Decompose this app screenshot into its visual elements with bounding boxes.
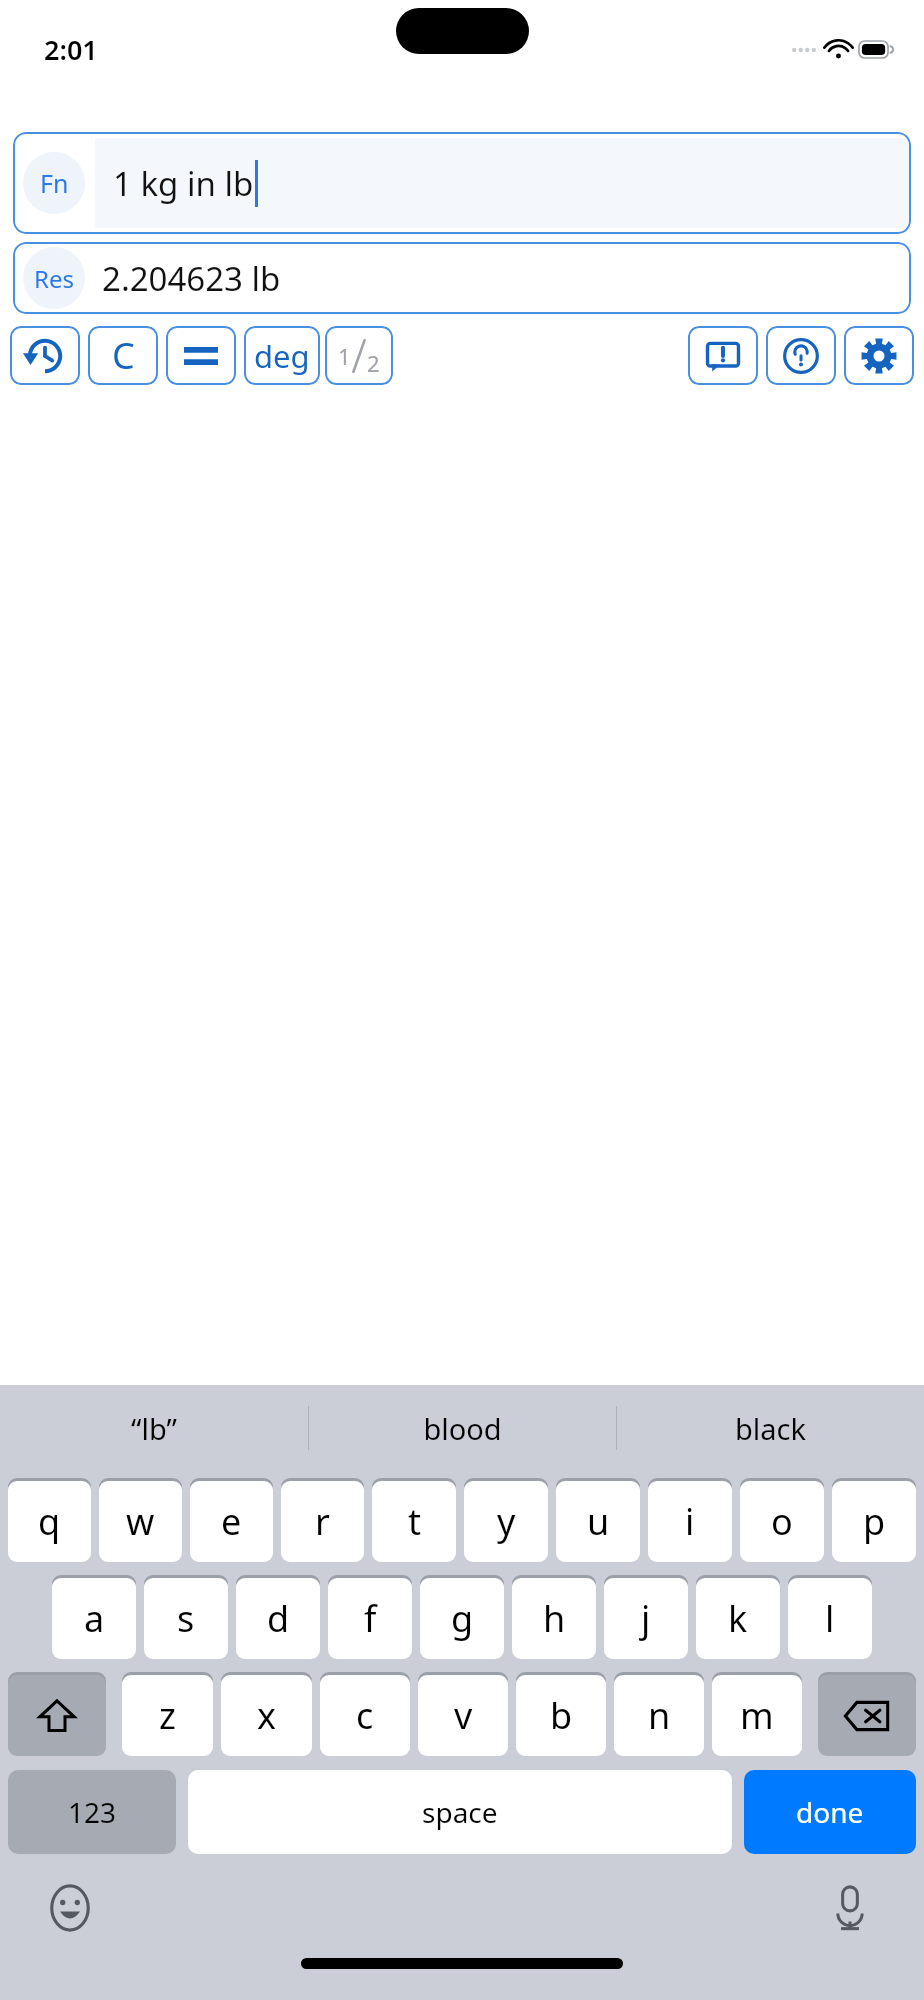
button[interactable]: j xyxy=(604,1578,688,1659)
button[interactable]: o xyxy=(740,1481,824,1562)
button[interactable]: Res xyxy=(13,242,911,314)
button[interactable]: s xyxy=(144,1578,228,1659)
button[interactable]: d xyxy=(236,1578,320,1659)
button[interactable]: Feedback xyxy=(688,326,758,385)
staticText: a xyxy=(84,1594,105,1643)
button[interactable]: “lb” xyxy=(0,1385,308,1471)
button[interactable]: f xyxy=(328,1578,412,1659)
button[interactable]: r xyxy=(281,1481,364,1562)
staticText: space xyxy=(422,1793,498,1831)
staticText: r xyxy=(315,1497,330,1546)
staticText: 2.204623 lb xyxy=(102,256,281,301)
staticText: black xyxy=(735,1409,806,1448)
staticText: 1 xyxy=(338,341,351,371)
staticText: o xyxy=(771,1497,793,1546)
button[interactable]: Clear xyxy=(88,326,158,385)
staticText: 123 xyxy=(68,1793,117,1831)
button[interactable]: m xyxy=(712,1675,802,1756)
button[interactable]: Shift xyxy=(8,1675,106,1756)
staticText: C xyxy=(112,331,135,380)
button[interactable]: space xyxy=(188,1770,732,1854)
staticText: c xyxy=(356,1691,374,1740)
staticText: h xyxy=(543,1594,566,1643)
staticText: Fn xyxy=(40,166,69,200)
button[interactable]: Voice input xyxy=(824,1882,876,1934)
button[interactable]: Help xyxy=(766,326,836,385)
button[interactable]: c xyxy=(320,1675,410,1756)
staticText: p xyxy=(863,1497,886,1546)
staticText: m xyxy=(740,1691,774,1740)
staticText: done xyxy=(796,1793,864,1831)
button[interactable]: b xyxy=(516,1675,606,1756)
button[interactable]: g xyxy=(420,1578,504,1659)
staticText: s xyxy=(177,1594,195,1643)
staticText: j xyxy=(641,1594,651,1643)
button[interactable]: Fn xyxy=(23,152,85,214)
staticText: l xyxy=(825,1594,835,1643)
button[interactable]: History xyxy=(10,326,80,385)
button[interactable]: l xyxy=(788,1578,872,1659)
button[interactable]: t xyxy=(372,1481,456,1562)
button[interactable]: Backspace xyxy=(818,1675,916,1756)
staticText: blood xyxy=(423,1409,502,1448)
staticText: 2:01 xyxy=(44,31,98,68)
staticText: 1 kg in lb xyxy=(113,161,254,206)
button[interactable]: black xyxy=(617,1385,924,1471)
staticText: v xyxy=(454,1691,473,1740)
button[interactable]: Fn xyxy=(13,132,911,234)
staticText: x xyxy=(257,1691,277,1740)
staticText: Res xyxy=(34,262,74,295)
button[interactable]: Emoji xyxy=(44,1882,96,1934)
staticText: t xyxy=(408,1497,421,1546)
staticText: y xyxy=(497,1497,516,1546)
button[interactable]: q xyxy=(8,1481,91,1562)
button[interactable]: Fraction xyxy=(325,326,393,385)
button[interactable]: Degrees xyxy=(244,326,320,385)
button[interactable]: a xyxy=(52,1578,136,1659)
button[interactable]: v xyxy=(418,1675,508,1756)
button[interactable]: blood xyxy=(309,1385,616,1471)
staticText: g xyxy=(451,1594,474,1643)
button[interactable]: 123 xyxy=(8,1770,176,1854)
button[interactable]: h xyxy=(512,1578,596,1659)
button[interactable]: done xyxy=(744,1770,916,1854)
staticText: “lb” xyxy=(131,1409,177,1448)
button[interactable]: x xyxy=(221,1675,312,1756)
button[interactable]: p xyxy=(832,1481,916,1562)
staticText: 2 xyxy=(367,348,380,378)
staticText: b xyxy=(550,1691,573,1740)
button[interactable]: Equals xyxy=(166,326,236,385)
button[interactable]: u xyxy=(556,1481,640,1562)
button[interactable]: i xyxy=(648,1481,732,1562)
button[interactable]: Settings xyxy=(844,326,914,385)
button[interactable]: e xyxy=(190,1481,273,1562)
staticText: q xyxy=(38,1497,61,1546)
staticText: d xyxy=(267,1594,290,1643)
button[interactable]: n xyxy=(614,1675,704,1756)
staticText: f xyxy=(364,1594,377,1643)
staticText: n xyxy=(648,1691,671,1740)
staticText: i xyxy=(685,1497,695,1546)
staticText: w xyxy=(126,1497,155,1546)
button[interactable]: z xyxy=(122,1675,213,1756)
button[interactable]: k xyxy=(696,1578,780,1659)
button[interactable]: w xyxy=(99,1481,182,1562)
button[interactable]: y xyxy=(464,1481,548,1562)
staticText: e xyxy=(221,1497,242,1546)
staticText: k xyxy=(728,1594,748,1643)
staticText: deg xyxy=(254,335,310,377)
staticText: z xyxy=(159,1691,176,1740)
staticText: u xyxy=(587,1497,610,1546)
